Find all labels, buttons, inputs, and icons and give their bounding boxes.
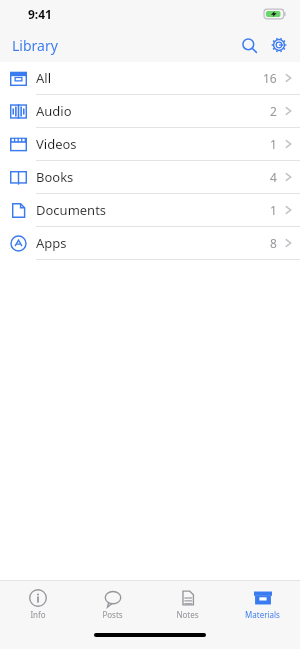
staticText: Posts — [102, 609, 123, 620]
button[interactable]: Videos — [0, 128, 300, 161]
staticText: 1 — [270, 136, 277, 152]
staticText: 16 — [263, 70, 277, 86]
button[interactable]: Settings — [266, 32, 292, 58]
button[interactable]: Library — [12, 36, 58, 55]
staticText: Books — [36, 168, 74, 186]
button[interactable]: Info — [0, 589, 75, 620]
button[interactable]: Posts — [75, 589, 150, 620]
staticText: Info — [30, 609, 46, 620]
staticText: Notes — [176, 609, 199, 620]
staticText: Videos — [36, 135, 77, 153]
button[interactable]: Notes — [150, 589, 225, 620]
button[interactable]: Documents — [0, 194, 300, 227]
staticText: Audio — [36, 102, 72, 120]
staticText: 9:41 — [28, 6, 52, 22]
button[interactable]: All — [0, 62, 300, 95]
button[interactable]: Books — [0, 161, 300, 194]
button[interactable]: Apps — [0, 227, 300, 260]
button[interactable]: Materials — [225, 589, 300, 620]
button[interactable]: Audio — [0, 95, 300, 128]
staticText: Documents — [36, 201, 107, 219]
staticText: Apps — [36, 234, 67, 252]
staticText: 2 — [270, 103, 277, 119]
staticText: All — [36, 69, 52, 87]
staticText: 4 — [270, 169, 277, 185]
staticText: Materials — [245, 609, 280, 620]
button[interactable]: Search — [236, 32, 262, 58]
staticText: 8 — [270, 235, 277, 251]
staticText: 1 — [270, 202, 277, 218]
